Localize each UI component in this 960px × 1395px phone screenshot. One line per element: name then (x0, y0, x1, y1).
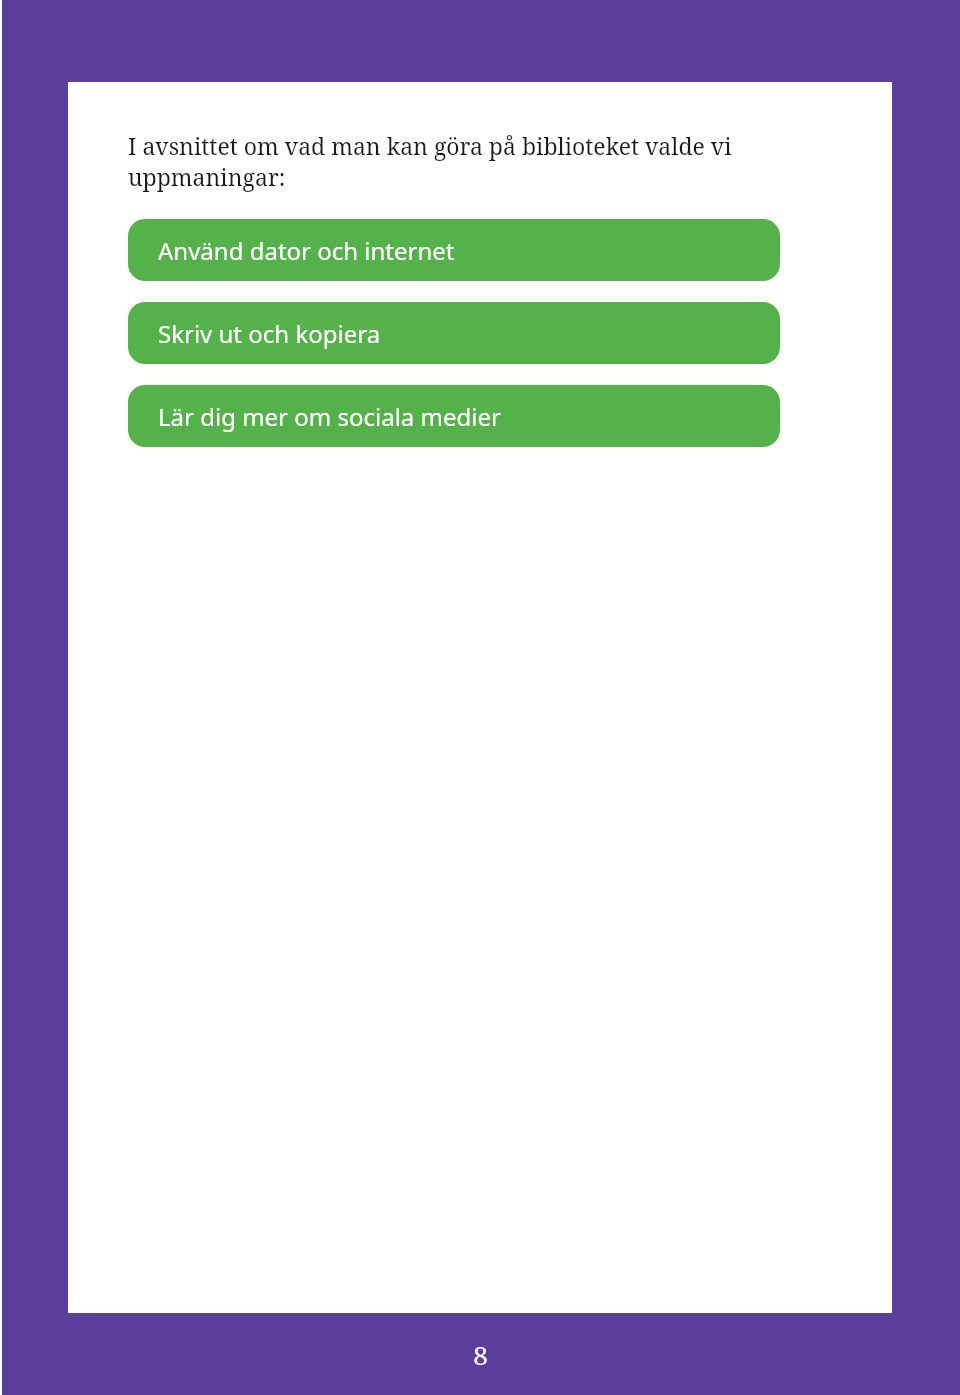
staticText: Lär dig mer om sociala medier (158, 400, 501, 433)
button[interactable]: Skriv ut och kopiera (128, 302, 780, 364)
button[interactable]: Använd dator och internet (128, 219, 780, 281)
button[interactable]: Lär dig mer om sociala medier (128, 385, 780, 447)
staticText: I avsnittet om vad man kan göra på bibli… (128, 130, 874, 192)
staticText: Skriv ut och kopiera (158, 317, 381, 350)
staticText: 8 (473, 1337, 488, 1372)
staticText: Använd dator och internet (158, 234, 455, 267)
